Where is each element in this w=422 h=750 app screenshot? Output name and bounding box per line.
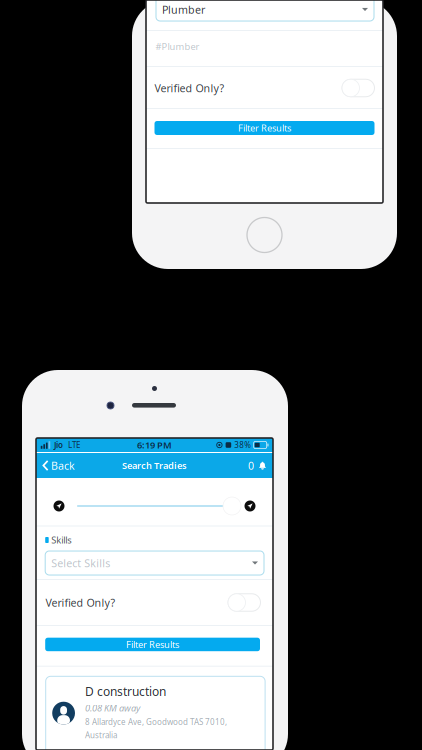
button[interactable]: Filter Results (154, 121, 374, 135)
button[interactable]: 0 (242, 453, 273, 478)
button[interactable]: Verified Only toggle (342, 79, 374, 97)
staticText: Verified Only? (154, 81, 224, 95)
staticText: Filter Results (126, 638, 179, 651)
button[interactable]: Back (36, 453, 81, 478)
staticText: D construction (85, 683, 166, 699)
staticText: 0.08 KM away (85, 702, 140, 714)
staticText: 6:19 PM (137, 439, 172, 451)
staticText: Search Tradies (122, 459, 187, 472)
staticText: Select Skills (51, 556, 110, 570)
staticText: Jio (54, 440, 63, 450)
button[interactable]: D construction (46, 676, 265, 750)
staticText: Verified Only? (45, 595, 115, 610)
staticText: Back (51, 458, 75, 473)
button[interactable]: Verified Only toggle (228, 594, 260, 611)
staticText: 0 (248, 458, 254, 473)
staticText: LTE (68, 440, 80, 450)
staticText: Filter Results (238, 122, 291, 134)
staticText: Skills (51, 534, 71, 546)
button[interactable]: Filter Results (45, 638, 260, 651)
button[interactable]: Select Skills (45, 551, 264, 575)
staticText: 38% (234, 440, 251, 450)
staticText: Plumber (162, 2, 205, 17)
staticText: #Plumber (155, 40, 199, 53)
staticText: Australia (85, 730, 117, 740)
staticText: 8 Allardyce Ave, Goodwood TAS 7010, (85, 717, 227, 727)
button[interactable]: Plumber (156, 0, 374, 21)
